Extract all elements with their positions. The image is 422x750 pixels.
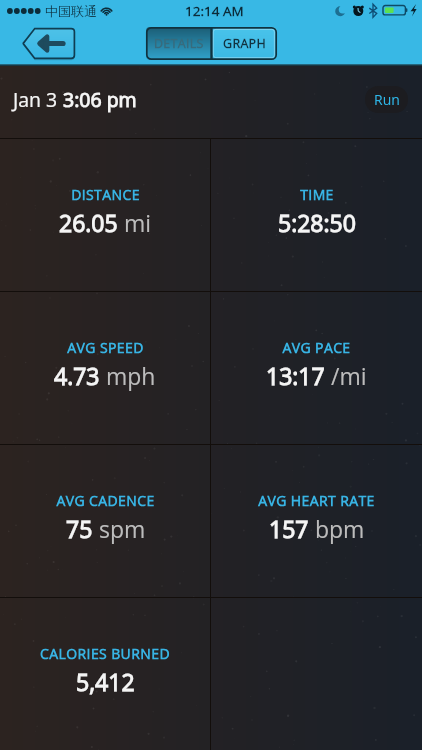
staticText: 12:14 AM <box>185 2 244 20</box>
button[interactable]: AVG PACE <box>211 292 422 444</box>
staticText: Run <box>374 90 400 109</box>
button[interactable]: Back <box>21 27 76 60</box>
staticText: 4.73 <box>54 360 100 391</box>
staticText: bpm <box>309 513 365 544</box>
staticText: CALORIES BURNED <box>40 644 170 663</box>
button[interactable]: Run <box>365 86 408 113</box>
staticText: AVG SPEED <box>67 338 144 357</box>
staticText: AVG PACE <box>282 338 351 357</box>
staticText: 75 <box>66 513 93 544</box>
staticText: 26.05 <box>59 207 118 238</box>
staticText: mi <box>118 207 152 238</box>
staticText: spm <box>93 513 146 544</box>
staticText: GRAPH <box>223 35 266 52</box>
staticText: 5:28:50 <box>278 207 356 238</box>
button[interactable]: AVG SPEED <box>0 292 210 444</box>
staticText: AVG CADENCE <box>56 491 155 510</box>
button[interactable]: AVG CADENCE <box>0 445 210 597</box>
button[interactable]: DISTANCE <box>0 139 210 291</box>
staticText: 中国联通 <box>45 3 97 19</box>
staticText: 5,412 <box>76 666 135 697</box>
button[interactable]: CALORIES BURNED <box>0 598 210 750</box>
staticText: DETAILS <box>154 35 204 52</box>
staticText: TIME <box>300 185 334 204</box>
staticText: 3:06 pm <box>63 86 137 113</box>
staticText: mph <box>100 360 156 391</box>
button[interactable]: GRAPH <box>211 27 277 60</box>
staticText: 13:17 <box>266 360 325 391</box>
staticText: Jan 3 <box>13 86 63 113</box>
button[interactable]: AVG HEART RATE <box>211 445 422 597</box>
button[interactable]: DETAILS <box>146 27 211 60</box>
staticText: /mi <box>325 360 367 391</box>
staticText: 157 <box>269 513 309 544</box>
staticText: AVG HEART RATE <box>258 491 375 510</box>
staticText: DISTANCE <box>71 185 140 204</box>
button[interactable]: TIME <box>211 139 422 291</box>
